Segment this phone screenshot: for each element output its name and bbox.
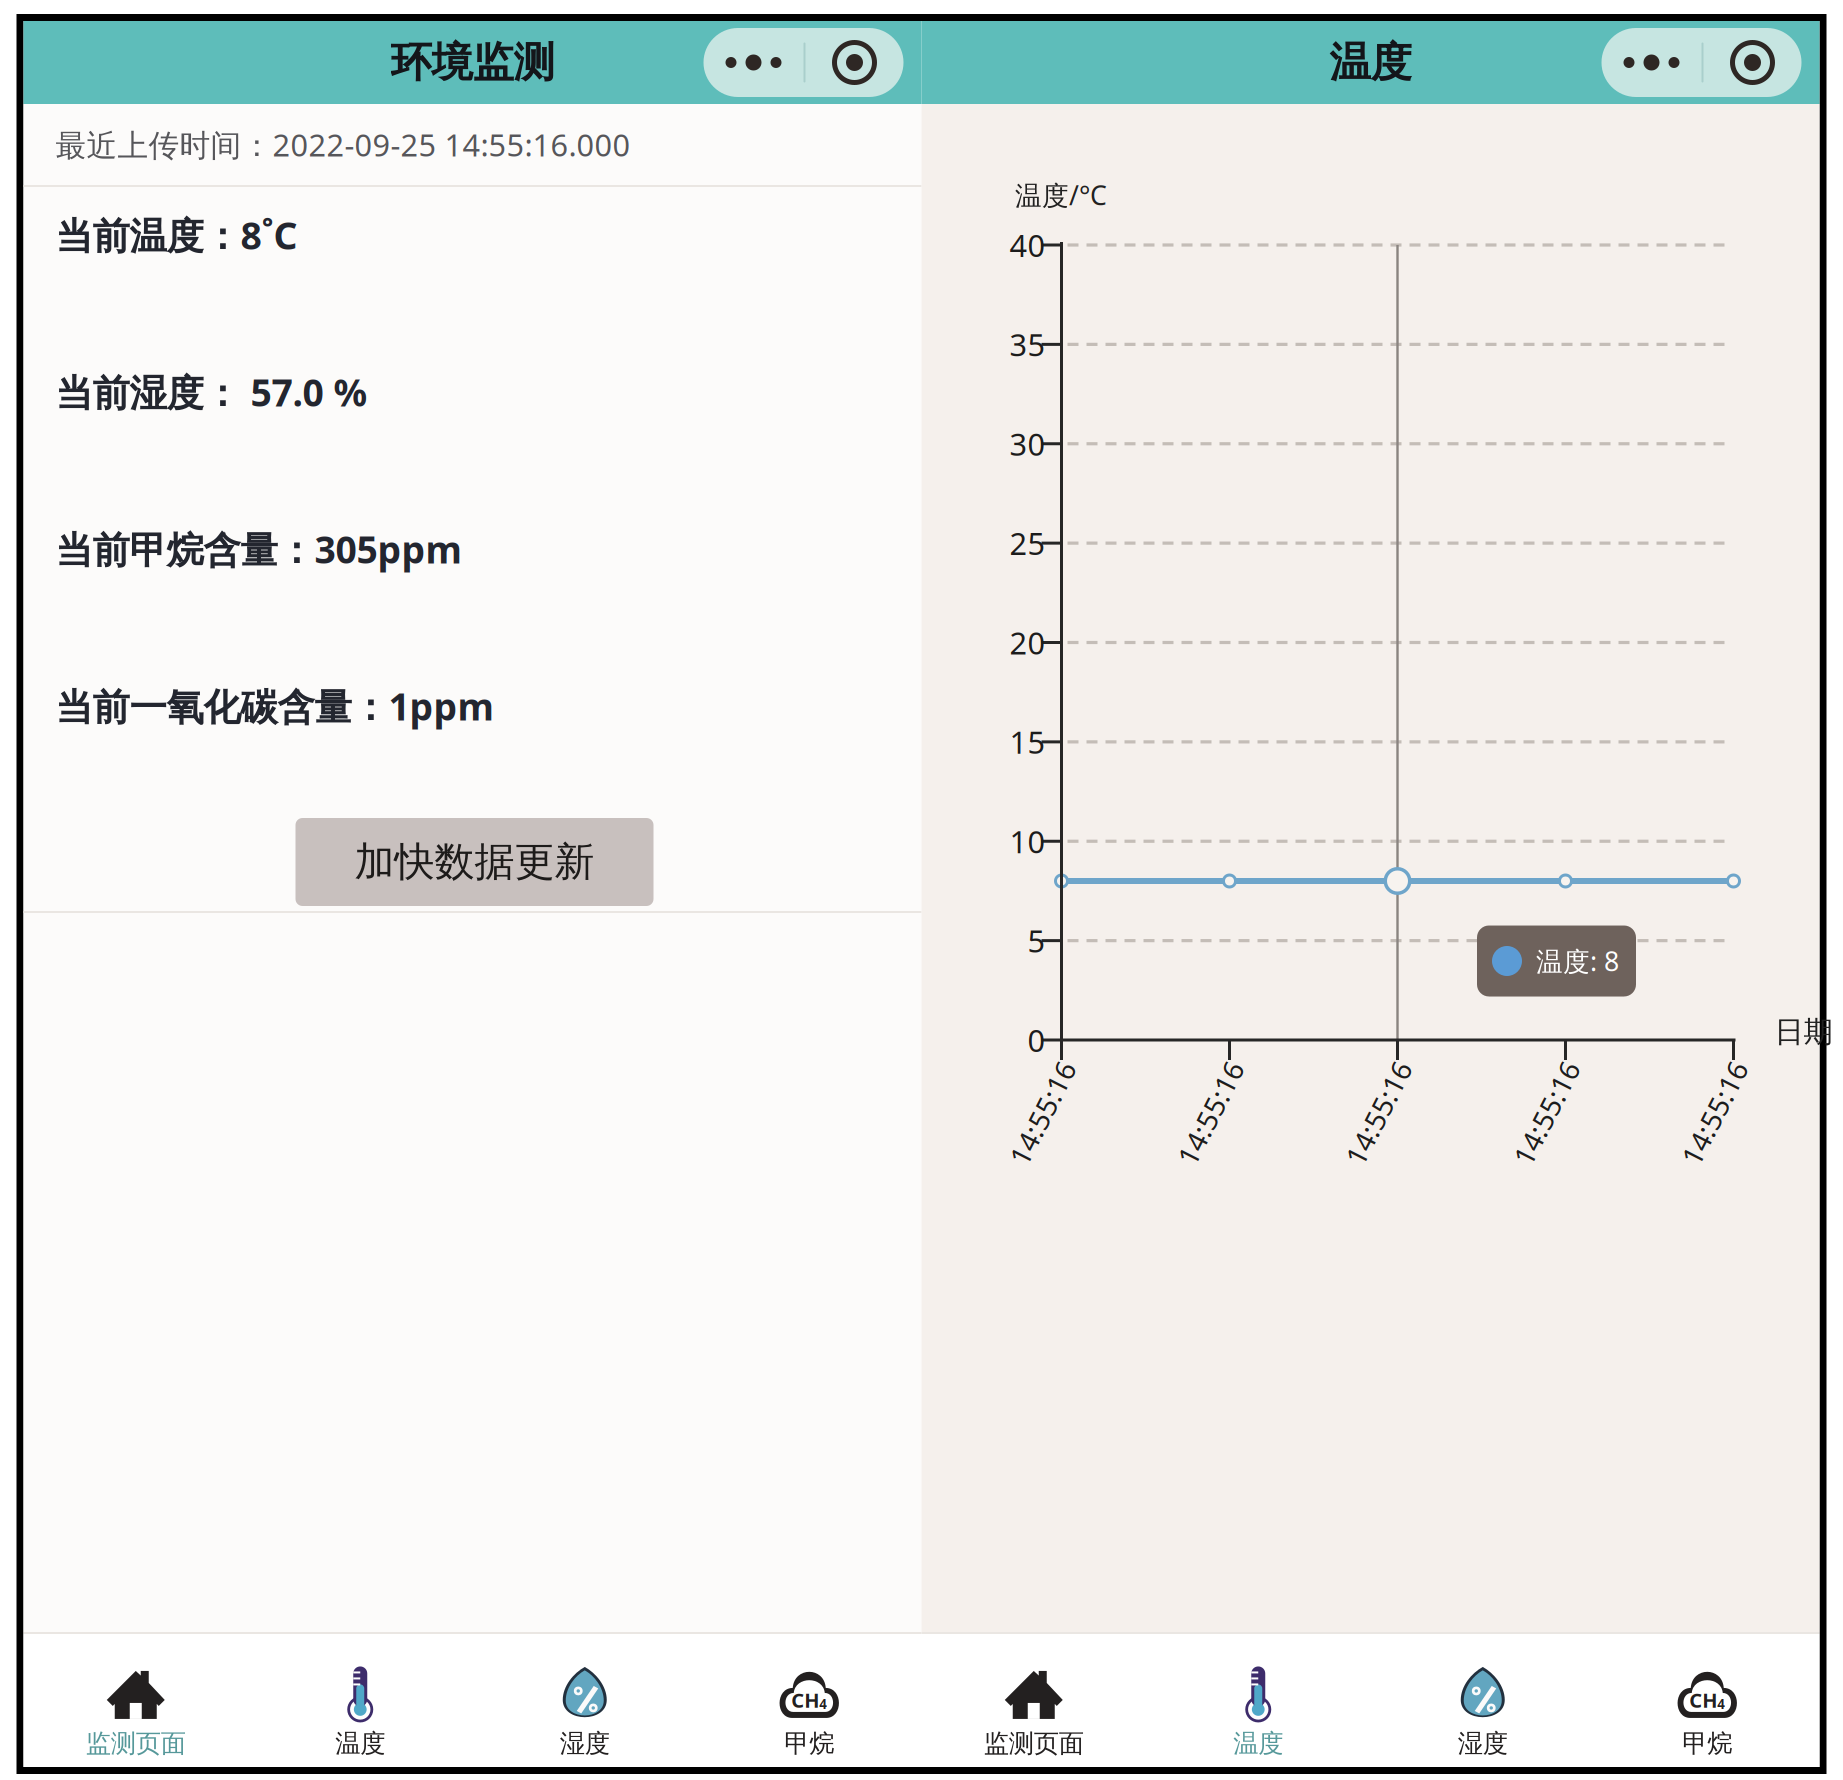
staticText: 4 bbox=[1717, 1695, 1725, 1713]
button[interactable]: Close mini program bbox=[1703, 28, 1801, 97]
staticText: 温度 bbox=[335, 1728, 385, 1759]
staticText: 监测页面 bbox=[86, 1728, 186, 1759]
staticText: 20 bbox=[1009, 622, 1045, 663]
button[interactable]: 监测页面 bbox=[23, 1634, 248, 1767]
button[interactable]: More options bbox=[1601, 28, 1701, 97]
button[interactable]: CH bbox=[1595, 1634, 1819, 1767]
staticText: 14:55:16 bbox=[1322, 1094, 1434, 1132]
button[interactable]: 湿度 bbox=[472, 1634, 697, 1767]
button[interactable]: 加快数据更新 bbox=[295, 818, 653, 906]
staticText: CH bbox=[791, 1687, 819, 1713]
staticText: 14:55:16 bbox=[986, 1094, 1098, 1132]
button[interactable]: 温度 bbox=[1146, 1634, 1370, 1767]
staticText: 温度 bbox=[1329, 37, 1411, 88]
staticText: 当前一氧化碳含量：1ppm bbox=[55, 681, 493, 731]
staticText: 湿度 bbox=[1458, 1728, 1508, 1759]
staticText: 当前甲烷含量：305ppm bbox=[55, 524, 461, 574]
staticText: 10 bbox=[1009, 821, 1045, 862]
staticText: 25 bbox=[1009, 523, 1045, 563]
staticText: 30 bbox=[1009, 423, 1045, 464]
button[interactable]: 温度 bbox=[248, 1634, 472, 1767]
staticText: 加快数据更新 bbox=[354, 837, 594, 886]
staticText: 当前温度：8˚C bbox=[55, 210, 297, 260]
staticText: 最近上传时间：2022-09-25 14:55:16.000 bbox=[55, 124, 630, 165]
staticText: 监测页面 bbox=[984, 1728, 1084, 1759]
staticText: 5 bbox=[1027, 920, 1045, 961]
staticText: 日期 bbox=[1774, 1014, 1832, 1050]
staticText: 14:55:16 bbox=[1658, 1094, 1770, 1132]
staticText: 环境监测 bbox=[390, 37, 554, 88]
staticText: 湿度 bbox=[560, 1728, 610, 1759]
staticText: 4 bbox=[819, 1695, 827, 1713]
staticText: 14:55:16 bbox=[1490, 1094, 1602, 1132]
staticText: 温度 bbox=[1233, 1728, 1283, 1759]
staticText: 甲烷 bbox=[784, 1728, 834, 1759]
staticText: CH bbox=[1689, 1687, 1717, 1713]
staticText: 温度/°C bbox=[1015, 177, 1107, 213]
button[interactable]: More options bbox=[703, 28, 803, 97]
button[interactable]: CH bbox=[697, 1634, 921, 1767]
staticText: 温度: 8 bbox=[1536, 943, 1619, 979]
button[interactable]: 监测页面 bbox=[921, 1634, 1146, 1767]
staticText: 甲烷 bbox=[1682, 1728, 1732, 1759]
button[interactable]: 湿度 bbox=[1370, 1634, 1595, 1767]
staticText: 14:55:16 bbox=[1154, 1094, 1266, 1132]
button[interactable]: Close mini program bbox=[805, 28, 903, 97]
staticText: 当前湿度： 57.0 % bbox=[55, 367, 367, 417]
staticText: 0 bbox=[1027, 1020, 1045, 1060]
staticText: 15 bbox=[1009, 721, 1045, 762]
staticText: 35 bbox=[1009, 324, 1045, 365]
staticText: 40 bbox=[1009, 225, 1045, 265]
